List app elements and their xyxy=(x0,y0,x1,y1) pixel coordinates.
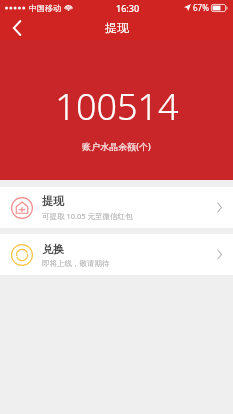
staticText: 提现 xyxy=(105,20,129,35)
button[interactable]: 兑换 xyxy=(0,234,233,275)
staticText: 即将上线，敬请期待 xyxy=(42,259,110,268)
staticText: 67% xyxy=(193,2,209,13)
button[interactable]: 提现 xyxy=(0,187,233,228)
staticText: 账户水晶余额(个) xyxy=(82,140,151,152)
staticText: 16:30 xyxy=(116,2,140,14)
staticText: 提现 xyxy=(42,194,64,208)
staticText: 兑换 xyxy=(42,242,64,256)
staticText: 可提取 10.05 元至微信红包 xyxy=(42,211,133,221)
staticText: 100514 xyxy=(55,82,179,131)
button[interactable]: Back xyxy=(0,15,34,40)
staticText: 中国移动 xyxy=(29,3,61,13)
